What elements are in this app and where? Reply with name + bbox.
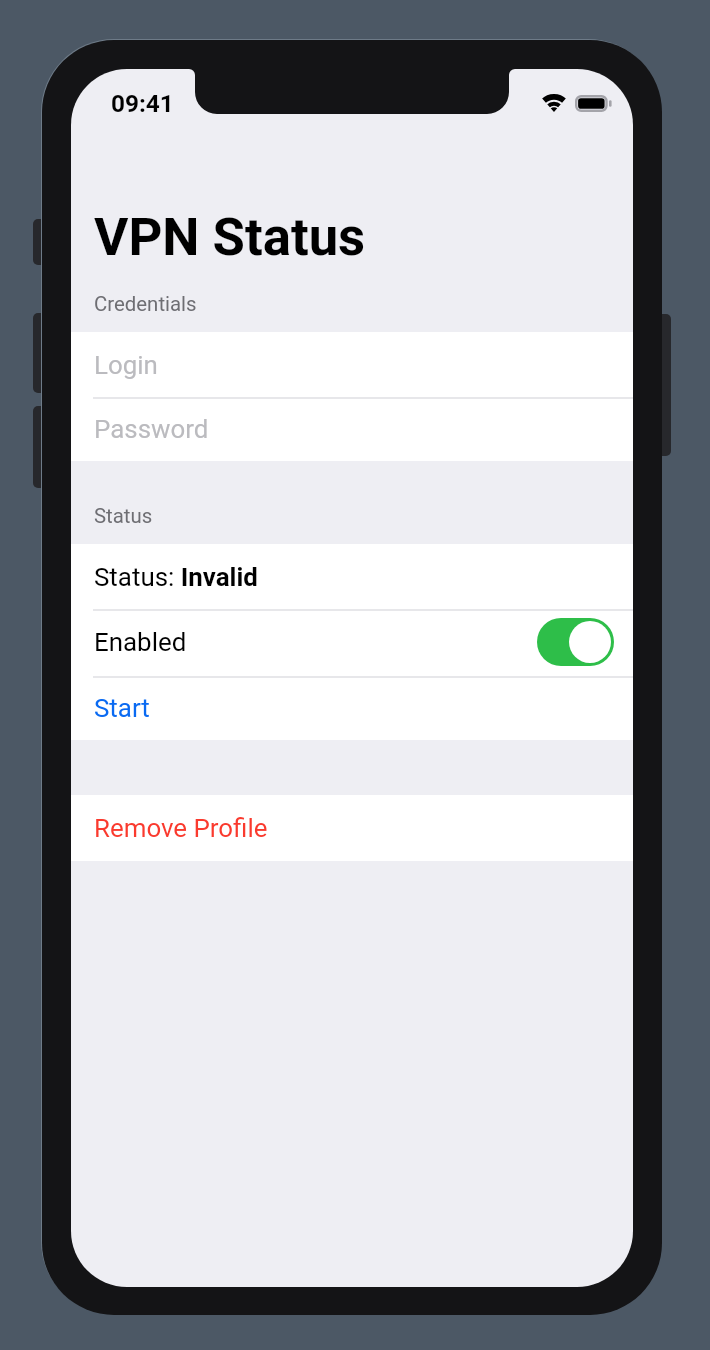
button[interactable]: Enabled — [71, 609, 633, 675]
staticText: Status — [94, 504, 153, 528]
staticText: Password — [94, 414, 209, 444]
staticText: 09:41 — [111, 89, 174, 118]
staticText: Login — [94, 350, 158, 380]
button[interactable]: Status: Invalid — [71, 544, 633, 610]
staticText: Credentials — [94, 292, 197, 316]
staticText: Remove Profile — [94, 813, 268, 843]
staticText: Status: Invalid — [94, 562, 258, 592]
staticText: Start — [94, 693, 150, 723]
staticText: VPN Status — [94, 206, 366, 268]
button[interactable]: Login — [71, 332, 633, 397]
button[interactable]: Password — [71, 397, 633, 461]
staticText: Enabled — [94, 627, 187, 657]
button[interactable]: Enabled toggle — [537, 618, 614, 666]
button[interactable]: Start — [71, 676, 633, 740]
button[interactable]: Remove Profile — [71, 795, 633, 861]
